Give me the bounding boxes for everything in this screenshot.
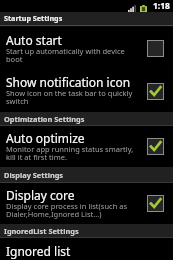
button[interactable]: Auto start — [0, 27, 173, 70]
button[interactable]: Enabled — [147, 138, 164, 155]
staticText: Display Settings — [4, 170, 64, 180]
staticText: Ignored list — [6, 243, 71, 259]
staticText: Monitor app running status smartly, kill… — [6, 144, 134, 162]
staticText: Optimization Settings — [4, 114, 85, 124]
staticText: Auto start — [6, 32, 62, 48]
staticText: Start up automatically with device boot — [6, 46, 134, 64]
button[interactable]: Disabled — [147, 40, 164, 57]
staticText: IgnoredList Settings — [4, 226, 79, 236]
button[interactable]: Enabled — [147, 195, 164, 212]
staticText: Startup Settings — [4, 13, 63, 23]
button[interactable]: Show notification icon — [0, 70, 173, 112]
staticText: Show icon on the task bar to quickly swi… — [6, 88, 134, 106]
button[interactable]: Ignored list — [0, 238, 173, 260]
button[interactable]: Auto optimize — [0, 126, 173, 167]
staticText: Auto optimize — [6, 130, 85, 146]
button[interactable]: Enabled — [147, 83, 164, 100]
staticText: Display core — [6, 187, 75, 203]
staticText: Display core process in list(such as Dia… — [6, 201, 134, 219]
staticText: 1:18 — [153, 0, 170, 12]
staticText: Show notification icon — [6, 74, 131, 90]
button[interactable]: Display core — [0, 183, 173, 224]
